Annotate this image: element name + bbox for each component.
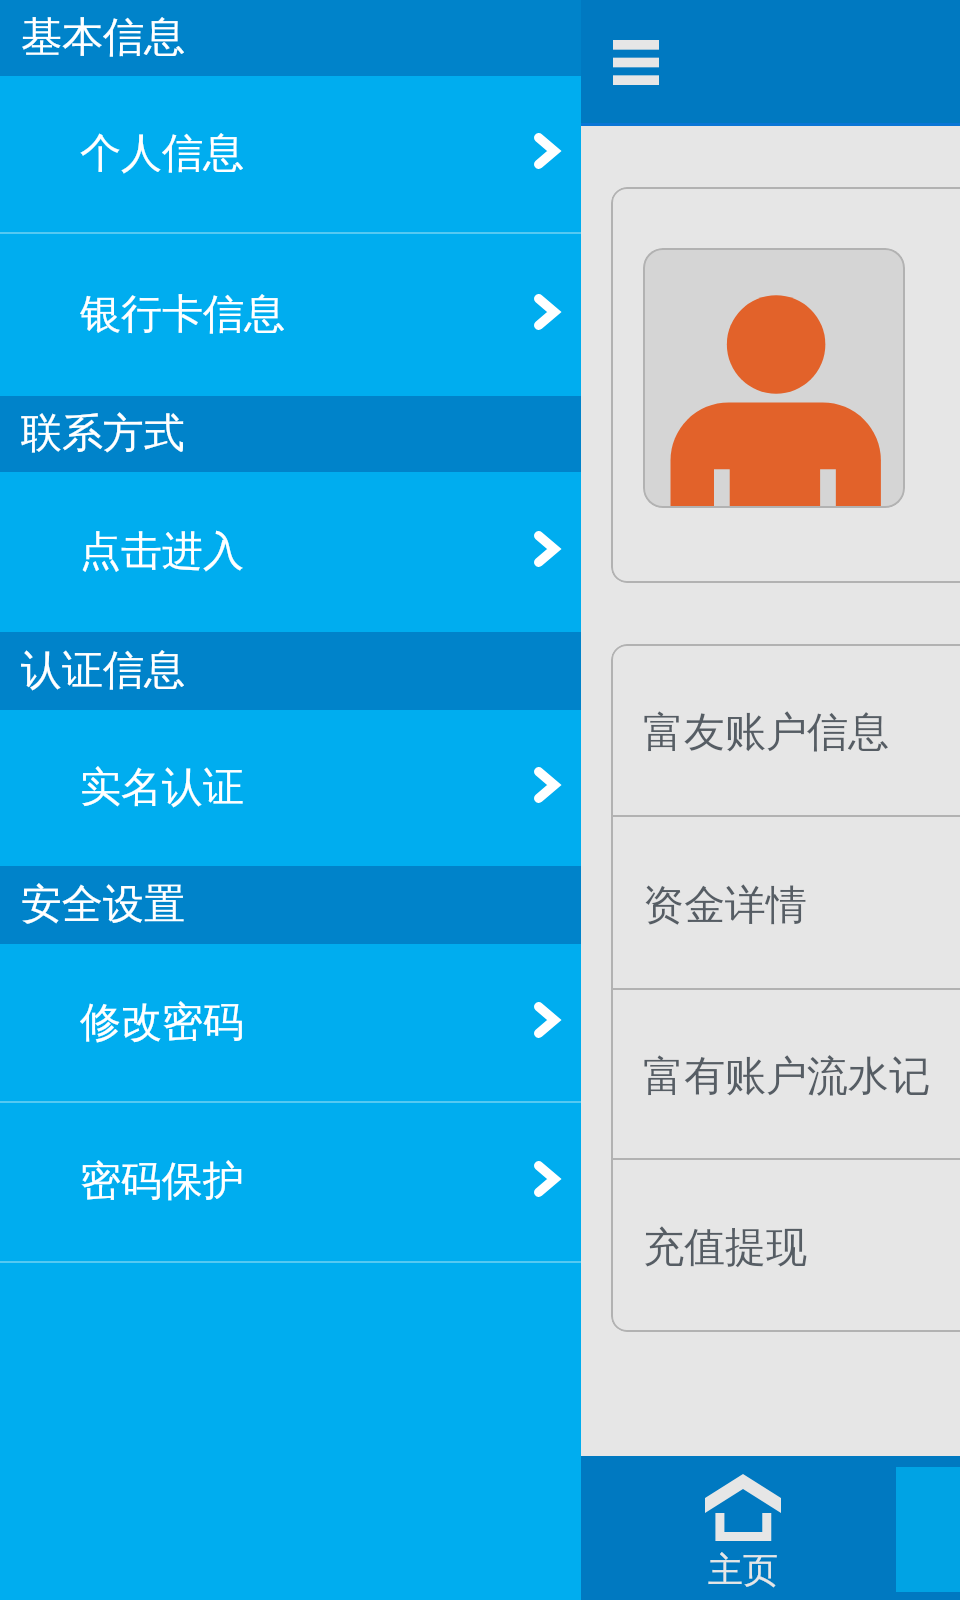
button[interactable]: 实名认证: [0, 710, 581, 866]
button[interactable]: [611, 187, 960, 583]
staticText: 基本信息: [21, 12, 185, 64]
staticText: 修改密码: [80, 997, 244, 1049]
button[interactable]: 个人信息: [0, 76, 581, 232]
staticText: 富有账户流水记: [643, 1051, 930, 1103]
button[interactable]: 修改密码: [0, 944, 581, 1101]
button[interactable]: 主页: [581, 1456, 896, 1600]
button[interactable]: 富有账户流水记: [611, 990, 960, 1160]
staticText: 主页: [708, 1548, 778, 1592]
staticText: 点击进入: [80, 526, 244, 578]
button[interactable]: 资金详情: [611, 817, 960, 990]
staticText: 资金详情: [643, 880, 807, 932]
staticText: 实名认证: [80, 762, 244, 814]
staticText: 富友账户信息: [643, 707, 889, 759]
staticText: 密码保护: [80, 1156, 244, 1208]
button[interactable]: 点击进入: [0, 472, 581, 632]
button[interactable]: 密码保护: [0, 1103, 581, 1261]
button[interactable]: Menu: [603, 29, 669, 95]
staticText: 个人信息: [80, 128, 244, 180]
button[interactable]: 充值提现: [611, 1160, 960, 1332]
button[interactable]: 富友账户信息: [611, 644, 960, 817]
staticText: 充值提现: [643, 1222, 807, 1274]
staticText: 银行卡信息: [80, 289, 285, 341]
staticText: 认证信息: [21, 645, 185, 697]
staticText: 安全设置: [21, 879, 185, 931]
button[interactable]: 银行卡信息: [0, 234, 581, 396]
staticText: 联系方式: [21, 408, 185, 460]
